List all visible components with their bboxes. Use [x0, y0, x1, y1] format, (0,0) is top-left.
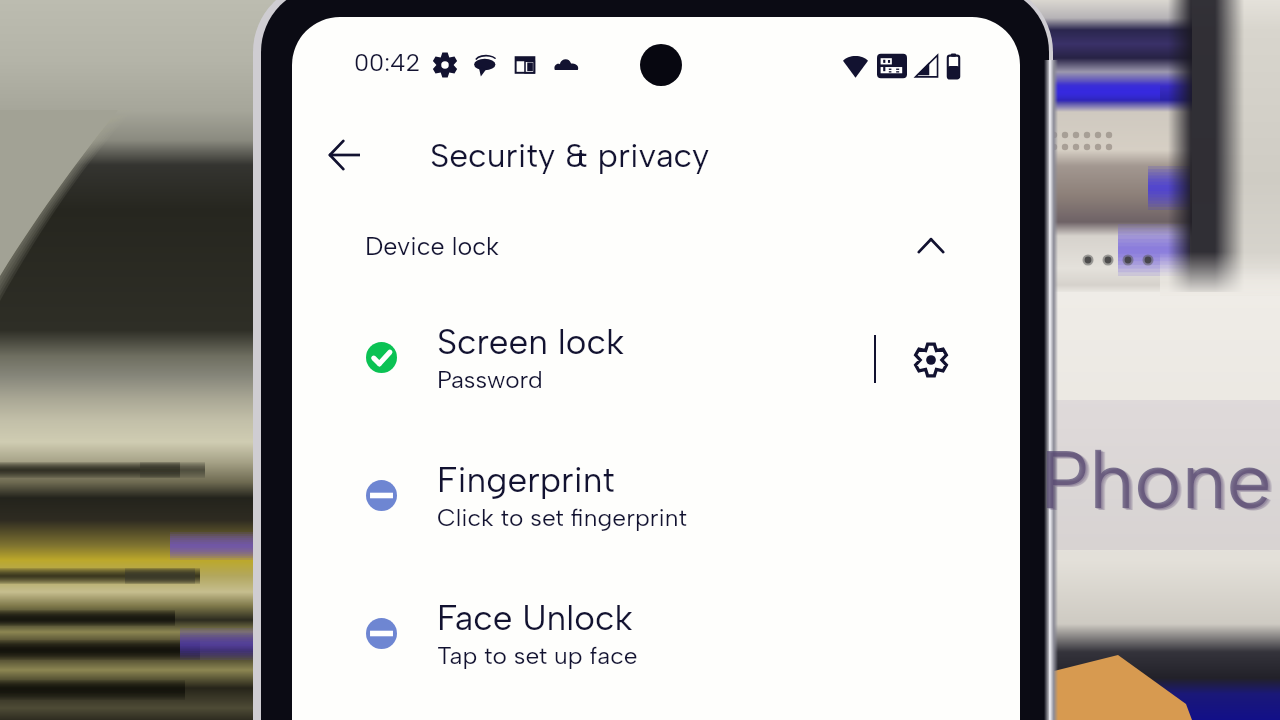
staticText: Password: [437, 365, 543, 394]
button[interactable]: Screen lock settings: [902, 331, 960, 389]
button[interactable]: Face Unlock: [292, 585, 1020, 681]
staticText: Fingerprint: [437, 459, 615, 501]
staticText: Phone: [1041, 433, 1273, 529]
button[interactable]: Back: [316, 127, 372, 183]
staticText: Click to set fingerprint: [437, 503, 688, 532]
staticText: 00:42: [354, 48, 421, 77]
staticText: Security & privacy: [430, 135, 710, 175]
staticText: Device lock: [365, 231, 500, 261]
button[interactable]: Device lock: [292, 222, 1020, 270]
staticText: Phone: [1042, 433, 1274, 529]
staticText: Phone: [1040, 432, 1272, 528]
staticText: Face Unlock: [437, 597, 633, 639]
button[interactable]: Screen lock: [292, 309, 1020, 405]
staticText: Tap to set up face: [437, 641, 638, 670]
staticText: Phone: [1044, 434, 1276, 530]
staticText: Phone: [1043, 434, 1275, 530]
button[interactable]: Fingerprint: [292, 447, 1020, 543]
staticText: Screen lock: [437, 321, 625, 363]
